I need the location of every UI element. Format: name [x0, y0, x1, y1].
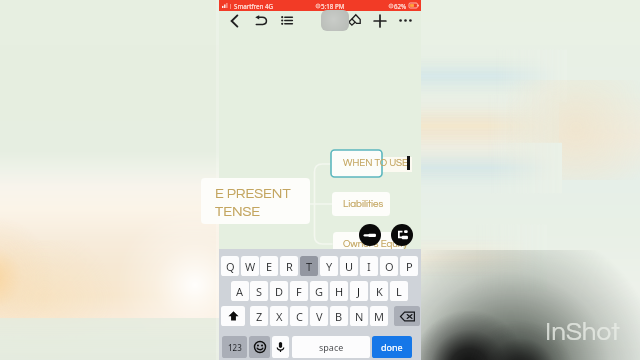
staticText: done [381, 341, 403, 353]
button[interactable] [201, 178, 310, 224]
staticText: S [256, 284, 263, 299]
staticText: M [374, 309, 384, 324]
staticText: InShot [545, 319, 620, 346]
button[interactable]: Add sibling node [359, 224, 381, 246]
staticText: X [276, 309, 283, 324]
button[interactable]: done [372, 336, 412, 358]
staticText: A [236, 284, 244, 299]
staticText: Owner's Equity [343, 239, 408, 249]
staticText: J [357, 284, 361, 299]
button[interactable]: G [310, 281, 328, 301]
button[interactable]: Back [224, 11, 244, 30]
staticText: W [245, 259, 256, 274]
staticText: Y [326, 259, 333, 274]
staticText: Q [226, 259, 235, 274]
button[interactable]: Undo [251, 11, 271, 30]
staticText: B [335, 309, 343, 324]
staticText: 62% [394, 2, 407, 10]
button[interactable]: Y [320, 256, 338, 276]
staticText: 5:18 PM [321, 2, 345, 10]
staticText: space [319, 341, 344, 353]
button[interactable]: I [360, 256, 378, 276]
button[interactable]: R [280, 256, 298, 276]
staticText: H [335, 284, 344, 299]
button[interactable]: S [250, 281, 268, 301]
button[interactable]: Shift [221, 306, 245, 326]
staticText: V [316, 309, 323, 324]
button[interactable]: Backspace [394, 306, 420, 326]
button[interactable]: D [270, 281, 288, 301]
button[interactable] [332, 192, 390, 216]
staticText: U [345, 259, 354, 274]
button[interactable]: Q [221, 256, 239, 276]
button[interactable]: E [260, 256, 278, 276]
staticText: I [367, 259, 371, 274]
button[interactable]: C [290, 306, 308, 326]
staticText: C [296, 309, 303, 324]
button[interactable]: Format [344, 11, 364, 30]
staticText: TENSE [215, 204, 261, 219]
staticText: N [355, 309, 364, 324]
button[interactable]: Dictate [272, 336, 289, 358]
button[interactable]: More options [395, 11, 415, 30]
button[interactable]: B [330, 306, 348, 326]
button[interactable]: K [370, 281, 388, 301]
staticText: 123 [228, 342, 242, 353]
staticText: E PRESENT [215, 186, 291, 201]
button[interactable]: P [400, 256, 418, 276]
staticText: Liabilities [343, 199, 384, 209]
staticText: G [315, 284, 324, 299]
staticText: E [266, 259, 273, 274]
button[interactable]: Add node [370, 11, 390, 30]
button[interactable]: Z [250, 306, 268, 326]
button[interactable]: L [390, 281, 408, 301]
button[interactable]: H [330, 281, 348, 301]
button[interactable]: space [292, 336, 370, 358]
button[interactable]: Emoji [249, 336, 270, 358]
staticText: | [229, 2, 233, 9]
staticText: R [286, 259, 293, 274]
button[interactable]: Add child node [391, 224, 413, 246]
button[interactable]: X [270, 306, 288, 326]
button[interactable]: V [310, 306, 328, 326]
button[interactable]: J [350, 281, 368, 301]
button[interactable] [333, 232, 403, 256]
staticText: T [306, 259, 313, 274]
button[interactable]: T [300, 256, 318, 276]
button[interactable]: M [370, 306, 388, 326]
button[interactable]: A [231, 281, 249, 301]
staticText: Smartfren 4G [234, 2, 273, 10]
button[interactable]: N [350, 306, 368, 326]
button[interactable]: O [380, 256, 398, 276]
button[interactable] [331, 150, 382, 177]
staticText: F [296, 284, 302, 299]
staticText: P [406, 259, 413, 274]
button[interactable]: Outline view [277, 11, 297, 30]
staticText: D [275, 284, 284, 299]
staticText: O [385, 259, 394, 274]
button[interactable]: F [290, 281, 308, 301]
button[interactable]: W [241, 256, 259, 276]
staticText: WHEN TO USE [343, 158, 409, 168]
staticText: L [396, 284, 402, 299]
staticText: Z [256, 309, 263, 324]
button[interactable]: Numbers [222, 336, 247, 358]
staticText: K [376, 284, 383, 299]
button[interactable]: U [340, 256, 358, 276]
